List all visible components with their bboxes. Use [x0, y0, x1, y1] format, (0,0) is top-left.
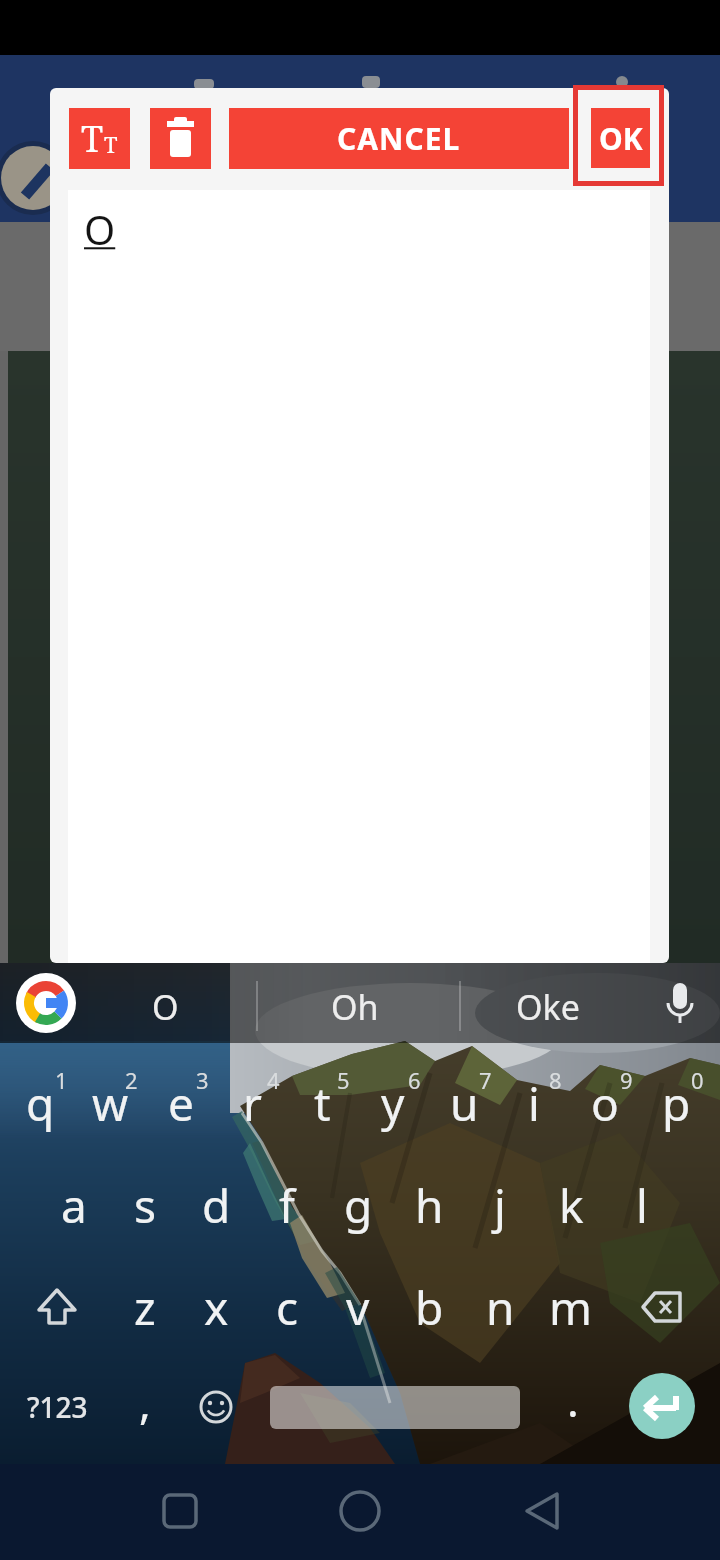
staticText: 3	[196, 1065, 209, 1095]
staticText: T	[104, 129, 118, 159]
staticText: Oh	[331, 984, 379, 1030]
button[interactable]: k	[537, 1173, 605, 1237]
staticText: k	[559, 1174, 584, 1237]
button[interactable]: x	[182, 1275, 250, 1339]
staticText: b	[415, 1276, 444, 1339]
button[interactable]	[186, 1377, 246, 1437]
button[interactable]	[650, 973, 710, 1033]
button[interactable]: .	[539, 1368, 607, 1432]
staticText: p	[662, 1072, 691, 1135]
staticText: 5	[337, 1065, 350, 1095]
staticText: c	[276, 1276, 299, 1339]
button[interactable]	[150, 108, 211, 169]
staticText: w	[92, 1072, 129, 1135]
staticText: h	[415, 1174, 444, 1237]
button[interactable]: n	[466, 1275, 534, 1339]
button[interactable]	[140, 1472, 220, 1552]
staticText: 6	[408, 1065, 421, 1095]
button[interactable]: i	[500, 1071, 568, 1135]
staticText: e	[168, 1072, 194, 1135]
staticText: t	[314, 1072, 331, 1135]
staticText: s	[134, 1174, 157, 1237]
button[interactable]	[27, 1277, 87, 1337]
button[interactable]: 5	[309, 1048, 377, 1112]
button[interactable]: v	[324, 1275, 392, 1339]
staticText: i	[528, 1072, 540, 1135]
staticText: z	[134, 1276, 156, 1339]
staticText: OK	[599, 118, 643, 159]
button[interactable]: 8	[521, 1048, 589, 1112]
staticText: l	[636, 1174, 648, 1237]
staticText: g	[344, 1174, 373, 1237]
button[interactable]	[632, 1277, 692, 1337]
button[interactable]: Oh	[321, 975, 389, 1039]
staticText: 8	[549, 1065, 562, 1095]
button[interactable]: t	[288, 1071, 356, 1135]
staticText: Oke	[516, 984, 580, 1030]
staticText: y	[381, 1072, 405, 1135]
staticText: n	[486, 1276, 515, 1339]
button[interactable]	[0, 145, 66, 211]
button[interactable]: Oke	[514, 975, 582, 1039]
button[interactable]: 0	[663, 1048, 720, 1112]
button[interactable]: w	[76, 1071, 144, 1135]
staticText: q	[26, 1072, 55, 1135]
staticText: 2	[125, 1065, 138, 1095]
button[interactable]: b	[395, 1275, 463, 1339]
button[interactable]: l	[608, 1173, 676, 1237]
staticText: x	[204, 1276, 229, 1339]
button[interactable]: r	[218, 1071, 286, 1135]
button[interactable]: 4	[239, 1048, 307, 1112]
staticText: 9	[620, 1065, 633, 1095]
staticText: CANCEL	[337, 118, 461, 159]
button[interactable]: c	[253, 1275, 321, 1339]
button[interactable]: y	[359, 1071, 427, 1135]
staticText: m	[549, 1276, 593, 1339]
button[interactable]: h	[395, 1173, 463, 1237]
button[interactable]: o	[571, 1071, 639, 1135]
button[interactable]: CANCEL	[229, 108, 569, 169]
staticText: f	[279, 1174, 295, 1237]
staticText: 1	[55, 1065, 68, 1095]
button[interactable]: f	[253, 1173, 321, 1237]
button[interactable]: 6	[380, 1048, 448, 1112]
staticText: .	[567, 1370, 579, 1430]
staticText: d	[202, 1174, 231, 1237]
button[interactable]	[320, 1472, 400, 1552]
button[interactable]: T	[69, 108, 130, 169]
button[interactable]: ?123	[23, 1375, 91, 1439]
button[interactable]: 1	[27, 1048, 95, 1112]
button[interactable]: z	[111, 1275, 179, 1339]
button[interactable]: O	[131, 975, 199, 1039]
button[interactable]	[16, 973, 76, 1033]
staticText: r	[243, 1072, 262, 1135]
button[interactable]	[629, 1373, 695, 1439]
button[interactable]: e	[147, 1071, 215, 1135]
button[interactable]: m	[537, 1275, 605, 1339]
button[interactable]: g	[324, 1173, 392, 1237]
staticText: 4	[267, 1065, 280, 1095]
button[interactable]: p	[642, 1071, 710, 1135]
button[interactable]: OK	[591, 108, 650, 168]
button[interactable]: O	[68, 190, 650, 963]
button[interactable]: a	[40, 1173, 108, 1237]
staticText: v	[346, 1276, 370, 1339]
staticText: a	[61, 1174, 87, 1237]
staticText: ,	[139, 1372, 151, 1432]
button[interactable]: 2	[97, 1048, 165, 1112]
button[interactable]: ,	[111, 1370, 179, 1434]
staticText: o	[591, 1072, 619, 1135]
staticText: u	[450, 1072, 479, 1135]
staticText: T	[81, 114, 104, 163]
button[interactable]: q	[6, 1071, 74, 1135]
button[interactable]: s	[111, 1173, 179, 1237]
button[interactable]	[500, 1472, 580, 1552]
button[interactable]: 9	[592, 1048, 660, 1112]
button[interactable]: j	[466, 1173, 534, 1237]
button[interactable]: d	[182, 1173, 250, 1237]
button[interactable]: 3	[168, 1048, 236, 1112]
staticText: 7	[479, 1065, 492, 1095]
button[interactable]: 7	[451, 1048, 519, 1112]
button[interactable]: u	[430, 1071, 498, 1135]
button[interactable]	[270, 1386, 520, 1429]
